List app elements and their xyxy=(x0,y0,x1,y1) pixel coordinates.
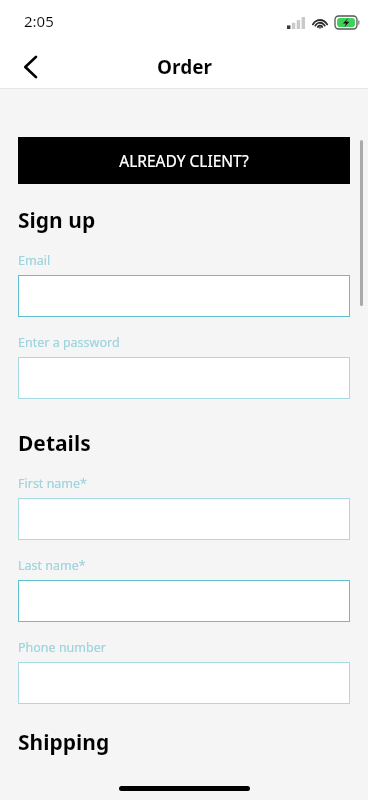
button[interactable] xyxy=(18,357,350,399)
button[interactable]: ALREADY CLIENT? xyxy=(18,137,350,184)
staticText: ALREADY CLIENT? xyxy=(119,150,249,171)
staticText: 2:05 xyxy=(24,11,54,31)
staticText: Email xyxy=(18,252,51,269)
staticText: Order xyxy=(157,54,212,80)
staticText: First name* xyxy=(18,475,87,492)
staticText: Phone number xyxy=(18,639,106,656)
staticText: Last name* xyxy=(18,557,86,574)
staticText: Sign up xyxy=(18,206,96,235)
button[interactable] xyxy=(18,580,350,622)
button[interactable] xyxy=(18,498,350,540)
button[interactable] xyxy=(18,275,350,317)
button[interactable]: Back xyxy=(8,45,52,89)
staticText: Enter a password xyxy=(18,334,120,351)
staticText: Shipping xyxy=(18,728,110,757)
staticText: Details xyxy=(18,429,91,458)
button[interactable] xyxy=(18,662,350,704)
